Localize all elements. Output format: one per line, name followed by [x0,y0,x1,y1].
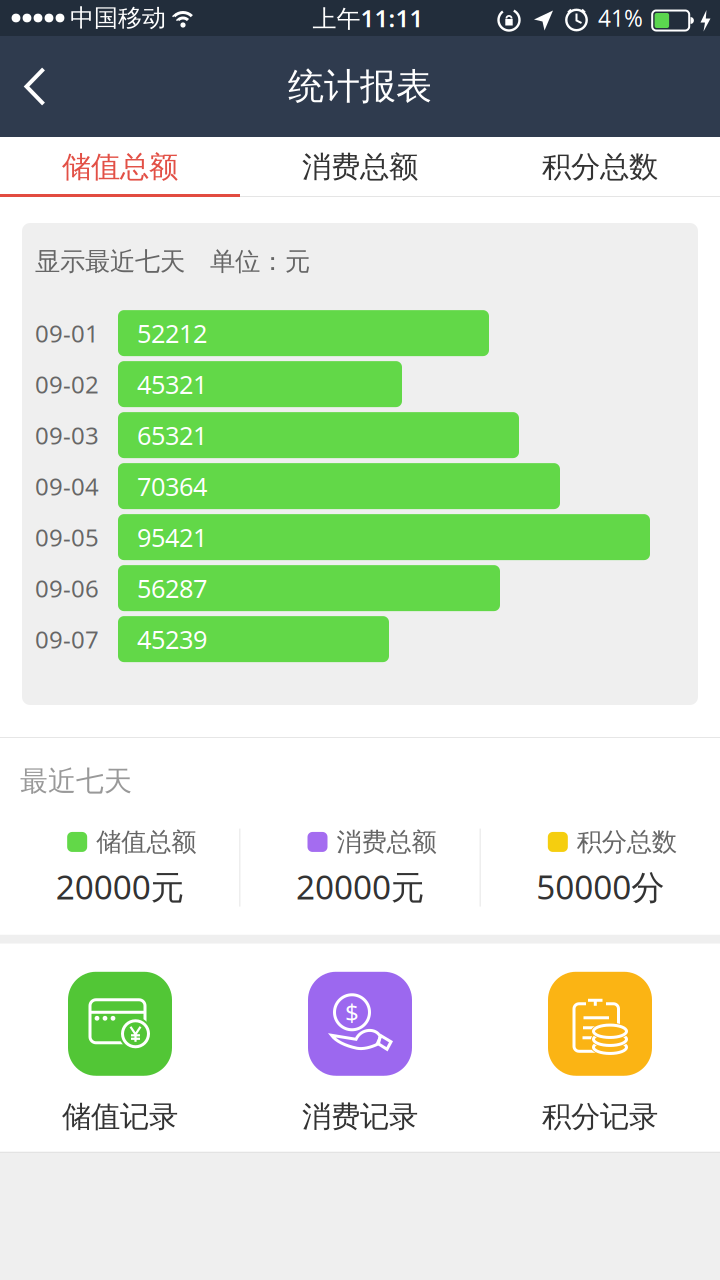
staticText: 20000元 [56,864,184,909]
staticText: 储值总额 [96,826,196,857]
staticText: 95421 [137,520,207,554]
staticText: 52212 [137,316,207,350]
button[interactable]: $ [240,972,480,1135]
staticText: 65321 [137,418,207,452]
staticText: $ [345,996,359,1028]
staticText: 09-06 [35,572,99,604]
staticText: 储值记录 [62,1099,178,1135]
staticText: 09-01 [35,317,99,349]
staticText: 45239 [137,622,207,656]
button[interactable]: 储值记录 [0,972,240,1135]
staticText: 56287 [137,571,207,605]
staticText: 09-07 [35,623,99,655]
staticText: 上午11:11 [312,2,423,34]
staticText: 09-04 [35,470,99,502]
staticText: 09-03 [35,419,99,451]
button[interactable]: 储值总额 [0,137,240,197]
staticText: 41% [598,3,643,33]
staticText: 中国移动 [70,3,166,33]
button[interactable]: 积分总数 [480,137,720,197]
button[interactable] [0,36,46,137]
staticText: 09-05 [35,521,99,553]
staticText: 储值总额 [62,149,178,185]
button[interactable]: 积分记录 [480,972,720,1135]
staticText: 消费总额 [302,149,418,185]
staticText: 50000分 [536,864,664,909]
staticText: 最近七天 [20,764,132,798]
staticText: 消费总额 [336,826,436,857]
button[interactable]: 消费总额 [240,137,480,197]
staticText: 20000元 [296,864,424,909]
staticText: 统计报表 [288,64,432,109]
staticText: 消费记录 [302,1099,418,1135]
staticText: 09-02 [35,368,99,400]
staticText: 45321 [137,367,207,401]
staticText: 积分总数 [542,149,658,185]
staticText: 显示最近七天 单位：元 [35,246,310,277]
staticText: 积分记录 [542,1099,658,1135]
staticText: 70364 [137,469,207,503]
staticText: 积分总数 [577,826,677,857]
